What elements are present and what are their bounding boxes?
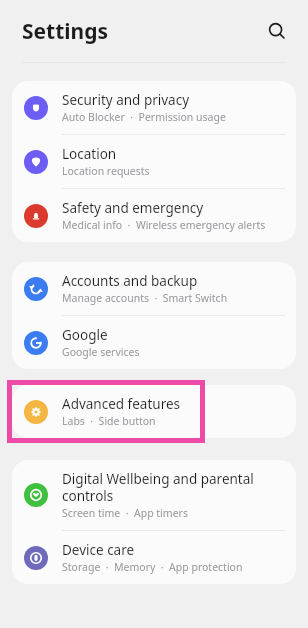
- button[interactable]: Safety and emergency: [12, 189, 296, 242]
- button[interactable]: Google: [12, 316, 296, 369]
- staticText: Security and privacy: [62, 91, 190, 109]
- staticText: Advanced features: [62, 395, 181, 413]
- staticText: Device care: [62, 541, 135, 559]
- button[interactable]: Security and privacy: [12, 81, 296, 134]
- staticText: Google services: [62, 345, 140, 359]
- staticText: Manage accounts · Smart Switch: [62, 291, 228, 305]
- staticText: Labs · Side button: [62, 414, 156, 428]
- staticText: Safety and emergency: [62, 199, 204, 217]
- staticText: Settings: [22, 17, 109, 46]
- staticText: Storage · Memory · App protection: [62, 560, 243, 574]
- staticText: Auto Blocker · Permission usage: [62, 110, 226, 124]
- staticText: Accounts and backup: [62, 272, 198, 290]
- staticText: Google: [62, 326, 108, 344]
- staticText: Screen time · App timers: [62, 506, 188, 520]
- button[interactable]: Search: [262, 16, 292, 46]
- staticText: Location: [62, 145, 117, 163]
- button[interactable]: Location: [12, 135, 296, 188]
- button[interactable]: Accounts and backup: [12, 262, 296, 315]
- staticText: Medical info · Wireless emergency alerts: [62, 218, 266, 232]
- staticText: Digital Wellbeing and parental controls: [62, 470, 282, 505]
- button[interactable]: Device care: [12, 531, 296, 584]
- button[interactable]: Advanced features: [12, 385, 296, 438]
- staticText: Location requests: [62, 164, 150, 178]
- button[interactable]: Digital Wellbeing and parental controls: [12, 460, 296, 530]
